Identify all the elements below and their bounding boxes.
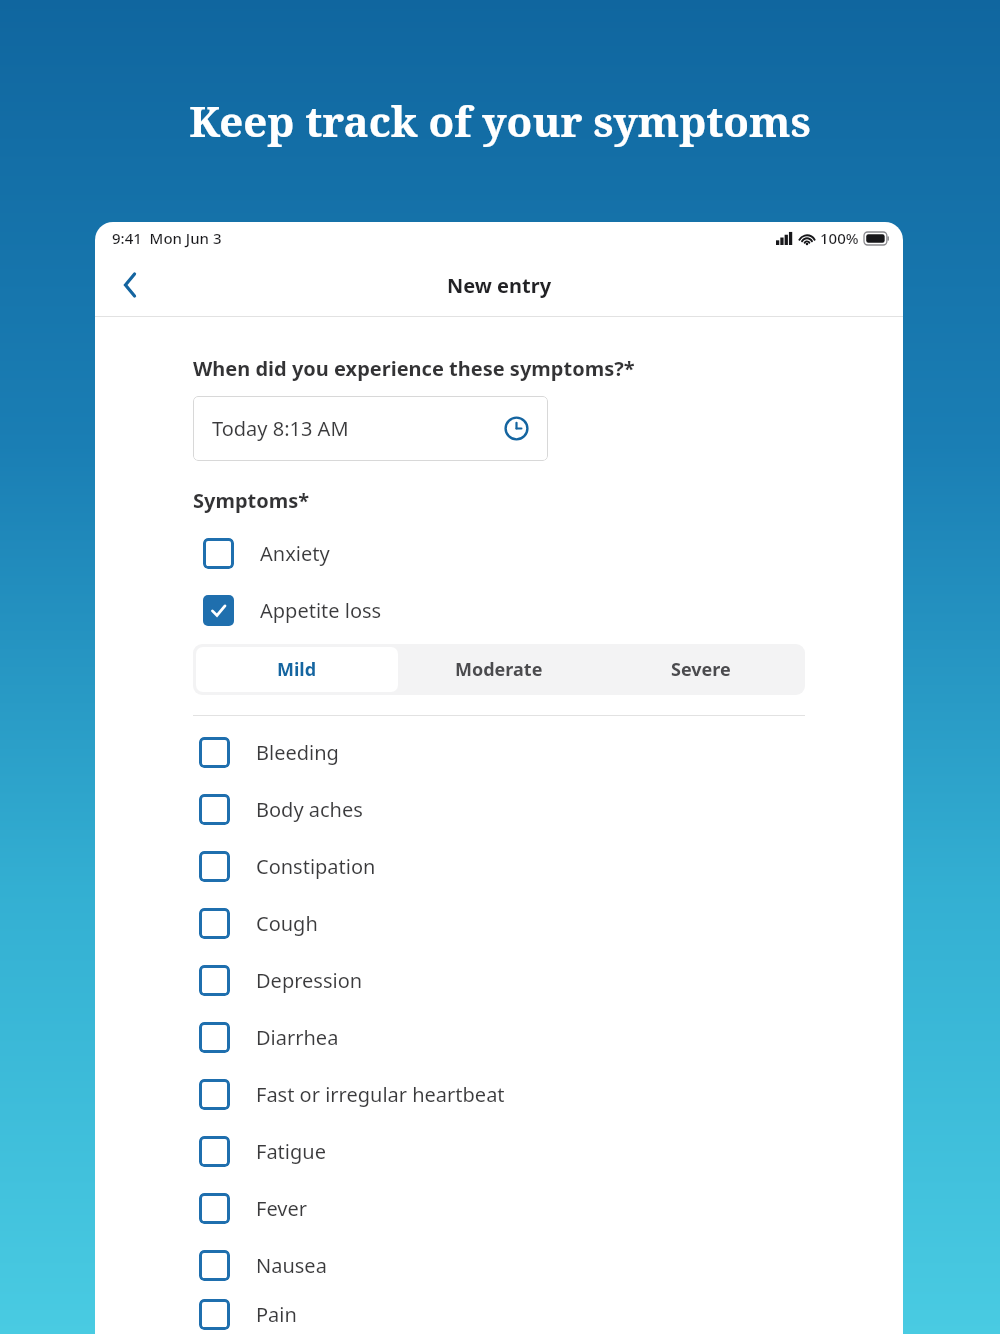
staticText: Symptoms* [193,487,310,514]
staticText: Cough [256,910,318,937]
button[interactable]: Moderate [398,647,600,692]
staticText: Fast or irregular heartbeat [256,1081,505,1108]
staticText: Moderate [455,657,543,682]
staticText: Bleeding [256,739,339,766]
button[interactable]: Fever [193,1180,805,1237]
button[interactable]: Bleeding [193,724,805,781]
button[interactable]: Pain [193,1294,805,1334]
button[interactable]: Fast or irregular heartbeat [193,1066,805,1123]
button[interactable]: Anxiety [193,525,805,582]
staticText: Severe [671,657,731,682]
staticText: Anxiety [260,540,330,567]
staticText: Pain [256,1301,297,1328]
staticText: Fever [256,1195,307,1222]
button[interactable]: Nausea [193,1237,805,1294]
button[interactable]: Fatigue [193,1123,805,1180]
staticText: Mild [277,657,317,682]
staticText: Appetite loss [260,597,382,624]
button[interactable]: Mild [196,647,398,692]
staticText: Constipation [256,853,376,880]
staticText: Depression [256,967,363,994]
staticText: 100% [820,228,859,248]
button[interactable]: Body aches [193,781,805,838]
staticText: Body aches [256,796,363,823]
button[interactable]: Cough [193,895,805,952]
button[interactable]: Constipation [193,838,805,895]
staticText: Keep track of your symptoms [189,92,811,149]
staticText: Today 8:13 AM [212,415,349,442]
button[interactable]: Today 8:13 AM [193,396,548,461]
staticText: 9:41 Mon Jun 3 [112,228,222,248]
staticText: Fatigue [256,1138,326,1165]
button[interactable]: Severe [600,647,802,692]
staticText: When did you experience these symptoms?* [193,355,635,382]
button[interactable]: Back [107,262,153,308]
button[interactable]: Appetite loss [193,582,805,639]
staticText: New entry [447,272,552,299]
button[interactable]: Diarrhea [193,1009,805,1066]
staticText: Nausea [256,1252,327,1279]
button[interactable]: Depression [193,952,805,1009]
staticText: Diarrhea [256,1024,339,1051]
